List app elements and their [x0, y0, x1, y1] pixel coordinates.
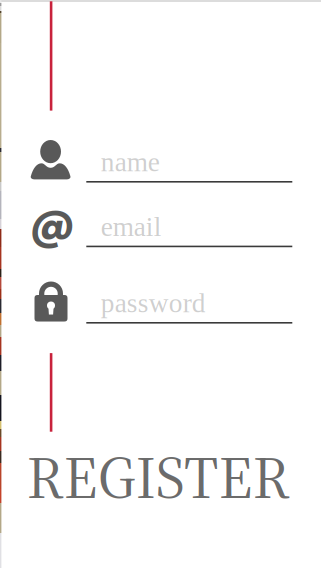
- button[interactable]: name: [30, 140, 291, 188]
- staticText: password: [101, 288, 206, 318]
- staticText: @: [29, 195, 75, 254]
- staticText: email: [101, 212, 162, 242]
- button[interactable]: @: [30, 210, 291, 258]
- staticText: REGISTER: [27, 436, 290, 518]
- button[interactable]: password: [30, 281, 291, 329]
- staticText: name: [101, 147, 160, 177]
- button[interactable]: REGISTER: [27, 448, 292, 506]
